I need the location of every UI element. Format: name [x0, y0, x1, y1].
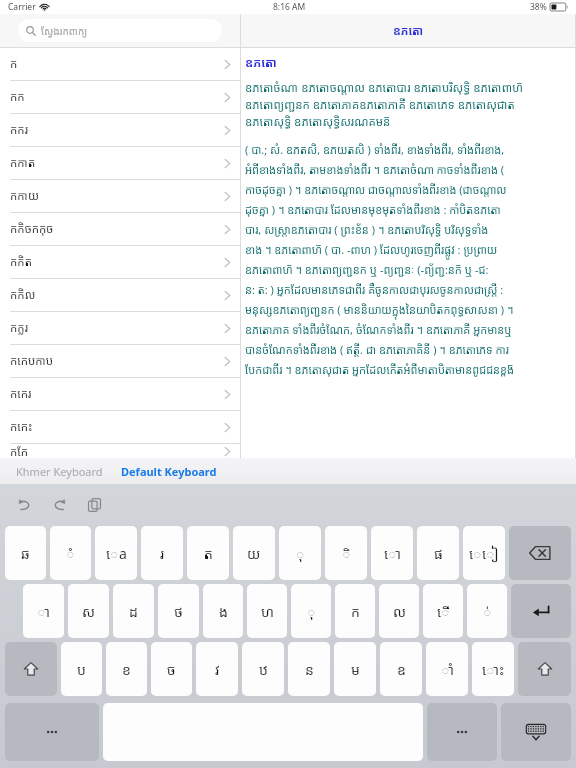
button[interactable]: ាំ	[426, 642, 468, 696]
staticText: ់	[483, 602, 492, 621]
staticText: ង	[219, 602, 228, 621]
button[interactable]: Hide keyboard	[501, 703, 571, 761]
button[interactable]: ិ	[325, 526, 367, 580]
button[interactable]: ម	[334, 642, 376, 696]
button[interactable]: Backspace	[509, 526, 571, 580]
button[interactable]: ត	[187, 526, 229, 580]
button[interactable]: ក	[335, 584, 375, 638]
button[interactable]: ា	[23, 584, 64, 638]
staticText: េៀ	[469, 544, 499, 563]
button[interactable]: កក្លរ	[0, 312, 240, 344]
button[interactable]: យ	[233, 526, 275, 580]
staticText: ស	[82, 602, 95, 621]
staticText: ស្វែងរកពាក្យ	[41, 24, 88, 38]
button[interactable]: ប	[61, 642, 102, 696]
staticText: បែកជាពីរ ។ ឧភតោសុជាត អ្នកដែលកើតអំពីមាតាប…	[245, 362, 515, 377]
staticText: Carrier	[8, 1, 36, 13]
staticText: ល	[393, 602, 406, 621]
button[interactable]: ផ	[417, 526, 459, 580]
button[interactable]: ក	[0, 48, 240, 80]
button[interactable]: Shift	[5, 642, 57, 696]
button[interactable]: ុ	[291, 584, 331, 638]
staticText: ឧភតោសុទ្ធិ ឧភតោសុទ្ធិសរណគមន៑	[245, 114, 391, 130]
button[interactable]: ខ	[106, 642, 147, 696]
staticText: ក	[10, 56, 18, 72]
staticText: កករ	[10, 122, 28, 138]
staticText: ត	[204, 544, 213, 563]
staticText: មនុស្សឧភតោព្យញ្ជនក ( មាននិយាយក្នុងនៃយាបិ…	[245, 302, 514, 317]
button[interactable]: Default Keyboard	[119, 460, 219, 483]
button[interactable]: វ	[196, 642, 238, 696]
staticText: 8:16 AM	[273, 1, 306, 13]
button[interactable]: កកិចកកុច	[0, 213, 240, 245]
button[interactable]: កកាត	[0, 147, 240, 179]
button[interactable]: ស្វែងរកពាក្យ	[18, 19, 222, 42]
button[interactable]: ់	[467, 584, 507, 638]
staticText: េa	[106, 544, 127, 563]
button[interactable]: េី	[423, 584, 463, 638]
staticText: ដុចគ្នា ) ។ ឧភតោបារ ដែលមានមុខមុតទាំងពីរខ…	[245, 202, 501, 217]
staticText: ន: ត: ) អ្នកដែលមានភេទជាពីរ គឺចូនកាលជាបុរ…	[245, 282, 504, 297]
staticText: កកិល	[10, 287, 36, 303]
button[interactable]: More	[5, 703, 99, 761]
staticText: េា	[384, 544, 401, 563]
staticText: បារ, សស្ត្រាឧភតោបារ ( ព្រះខ័ន ) ។ ឧភតោបរ…	[245, 222, 489, 237]
staticText: ន	[305, 660, 314, 679]
button[interactable]: កក	[0, 81, 240, 113]
staticText: កកាយ	[10, 188, 39, 204]
button[interactable]: េា	[371, 526, 413, 580]
button[interactable]: ល	[379, 584, 419, 638]
button[interactable]: េៀ	[463, 526, 505, 580]
staticText: អំពីខាងទាំងពីរ, តាមខាងទាំងពីរ ។ ឧភតោចំណា…	[245, 162, 505, 177]
button[interactable]: ហ	[247, 584, 287, 638]
staticText: ឧភតោ	[393, 23, 424, 39]
button[interactable]: កកេបកាប	[0, 345, 240, 377]
staticText: កកិត	[10, 254, 32, 270]
staticText: ំ	[66, 544, 75, 563]
staticText: ច	[167, 660, 176, 679]
button[interactable]: ថ	[158, 584, 199, 638]
staticText: ឧ	[397, 660, 406, 679]
button[interactable]: ឆ	[5, 526, 46, 580]
button[interactable]: ុ	[279, 526, 321, 580]
button[interactable]: កកាយ	[0, 180, 240, 212]
staticText: ុ	[296, 544, 305, 563]
button[interactable]: ន	[288, 642, 330, 696]
staticText: កកេបកាប	[10, 353, 54, 369]
button[interactable]: កករ	[0, 114, 240, 146]
staticText: ក	[351, 602, 360, 621]
staticText: បានចំណែកទាំងពីរខាង ( ឥត្ថី. ជា ឧភតោភាគិន…	[245, 342, 509, 357]
button[interactable]: ស	[68, 584, 109, 638]
staticText: ឧភតោពាហ៑ ។ ឧភតោព្យញ្ជនក ឬ -ព្យញ្ជនៈ (-ព្…	[245, 262, 489, 277]
staticText: វ	[215, 660, 220, 679]
button[interactable]: ំ	[50, 526, 91, 580]
button[interactable]: ច	[151, 642, 192, 696]
staticText: យ	[247, 544, 261, 563]
button[interactable]: ដ	[113, 584, 154, 638]
button[interactable]: ង	[203, 584, 243, 638]
staticText: ខាង ។ ឧភតោពាហ៑ ( បា. -ពាហ ) ដែលហូរចេញពីរ…	[245, 242, 498, 257]
button[interactable]: កកេះ	[0, 411, 240, 443]
button[interactable]: េa	[95, 526, 137, 580]
button[interactable]: Shift	[518, 642, 571, 696]
button[interactable]: រ	[141, 526, 183, 580]
button[interactable]: កកិល	[0, 279, 240, 311]
staticText: ផ	[434, 544, 443, 563]
button[interactable]: More	[427, 703, 497, 761]
button[interactable]: Khmer Keyboard	[14, 460, 105, 483]
staticText: ឆ	[21, 544, 30, 563]
staticText: Khmer Keyboard	[16, 464, 103, 479]
staticText: កាចដុចគ្នា ) ។ ឧភតោចណ្តាល ជាចណ្តាលទាំងពី…	[245, 182, 507, 197]
staticText: ហ	[261, 602, 274, 621]
staticText: Default Keyboard	[121, 464, 217, 479]
button[interactable]: កកិត	[0, 246, 240, 278]
button[interactable]: េាះ	[472, 642, 514, 696]
staticText: ឋ	[259, 660, 268, 679]
button[interactable]: ឧ	[380, 642, 422, 696]
button[interactable]: Return	[511, 584, 571, 638]
button[interactable]: ឋ	[242, 642, 284, 696]
staticText: ឧភតោ	[245, 54, 277, 70]
button[interactable]: កកេរ	[0, 378, 240, 410]
button[interactable]: កកែ	[0, 444, 240, 458]
